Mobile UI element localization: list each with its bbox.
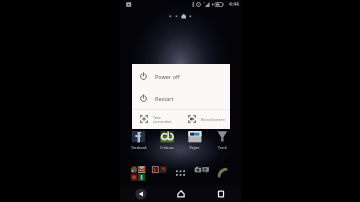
button[interactable]: Home xyxy=(161,186,201,202)
staticText: Paytm xyxy=(189,145,200,150)
button[interactable]: Recent apps xyxy=(201,186,241,202)
button[interactable]: Facebook xyxy=(128,145,150,150)
staticText: Power off xyxy=(155,73,180,80)
button[interactable]: Power off xyxy=(132,64,230,88)
staticText: Restart xyxy=(155,95,174,102)
button[interactable]: Paytm xyxy=(183,145,205,150)
button[interactable]: Record screen xyxy=(183,109,227,129)
staticText: Facebook xyxy=(131,145,147,150)
button[interactable]: Torch xyxy=(211,145,233,150)
button[interactable]: Back xyxy=(120,186,161,202)
staticText: Cricbuzz xyxy=(160,145,174,150)
button[interactable]: Restart xyxy=(132,88,230,109)
staticText: 4:44 xyxy=(229,1,239,8)
button[interactable]: Take screenshot xyxy=(135,109,175,129)
staticText: Record screen xyxy=(201,117,225,122)
staticText: Torch xyxy=(218,145,227,150)
button[interactable]: Cricbuzz xyxy=(156,145,178,150)
staticText: Take screenshot xyxy=(153,115,172,124)
